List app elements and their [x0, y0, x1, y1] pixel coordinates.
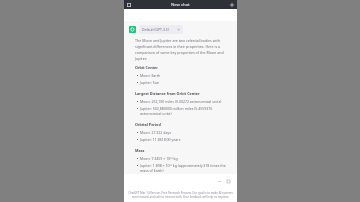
staticText: Jupiter: 503,880000 million miles (5.455…	[140, 106, 231, 116]
staticText: Orbit Center	[135, 65, 158, 70]
staticText: The Moon and Jupiter are two celestial b…	[135, 38, 231, 61]
button[interactable]: Default (GPT-3.5)	[139, 25, 183, 34]
staticText: Jupiter: 1.898 × 10²⁷ kg (approximately …	[140, 163, 231, 172]
button[interactable]: Send message	[217, 179, 222, 184]
staticText: Moon: Earth	[140, 73, 161, 78]
staticText: New chat	[171, 2, 190, 8]
button[interactable]: Expand	[226, 179, 231, 184]
staticText: Orbital Period	[135, 122, 161, 127]
staticText: Jupiter: 11.8618 (8) years	[140, 137, 181, 142]
staticText: Mass	[135, 148, 145, 153]
staticText: Moon: 252,100 miles (0.00272 astronomica…	[140, 99, 222, 104]
button[interactable]: Menu	[126, 2, 132, 8]
staticText: Moon: 7.3459 × 10²² kg	[140, 156, 178, 161]
button[interactable]: New chat	[229, 2, 235, 8]
staticText: Largest Distance from Orbit Center	[135, 91, 200, 96]
staticText: Moon: 27.322 days	[140, 130, 171, 135]
staticText: Jupiter: Sun	[140, 80, 159, 85]
staticText: Default (GPT-3.5)	[142, 27, 169, 32]
staticText: ChatGPT Mar 14 Version. Free Research Pr…	[128, 191, 233, 199]
